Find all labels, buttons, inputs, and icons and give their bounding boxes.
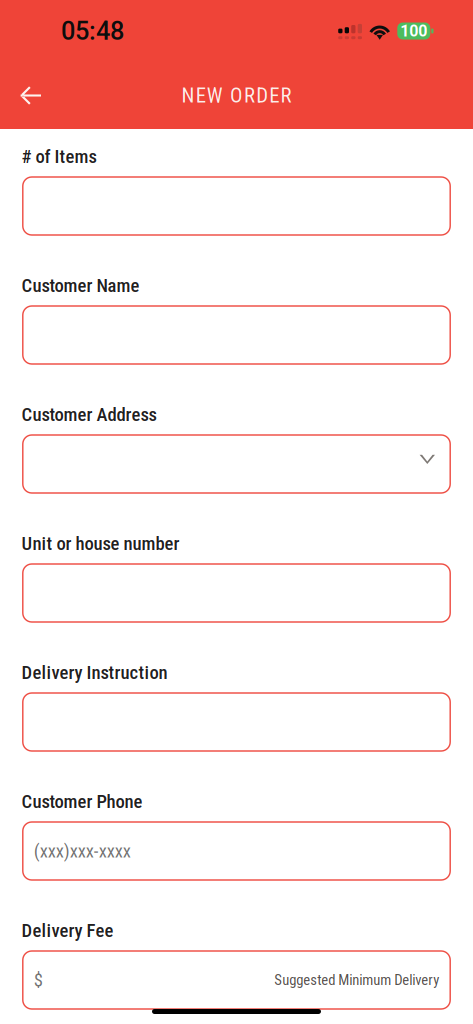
staticText: 05:48 (61, 16, 124, 46)
staticText: # of Items (21, 146, 96, 167)
button[interactable] (23, 177, 450, 235)
staticText: (xxx)xxx-xxxx (34, 840, 131, 862)
button[interactable] (23, 306, 450, 364)
button[interactable]: Back (0, 65, 62, 125)
staticText: $ (34, 969, 43, 991)
button[interactable]: $ (23, 951, 450, 1009)
button[interactable] (23, 564, 450, 622)
button[interactable]: (xxx)xxx-xxxx (23, 822, 450, 880)
staticText: 100 (400, 22, 427, 40)
staticText: Customer Address (21, 404, 156, 425)
staticText: Customer Phone (21, 791, 142, 812)
staticText: NEW ORDER (182, 83, 291, 108)
staticText: Suggested Minimum Delivery (274, 971, 439, 989)
staticText: Customer Name (21, 275, 139, 296)
button[interactable] (23, 693, 450, 751)
button[interactable] (23, 435, 450, 493)
staticText: Delivery Fee (21, 920, 113, 941)
staticText: Delivery Instruction (21, 662, 167, 683)
staticText: Unit or house number (21, 533, 179, 554)
